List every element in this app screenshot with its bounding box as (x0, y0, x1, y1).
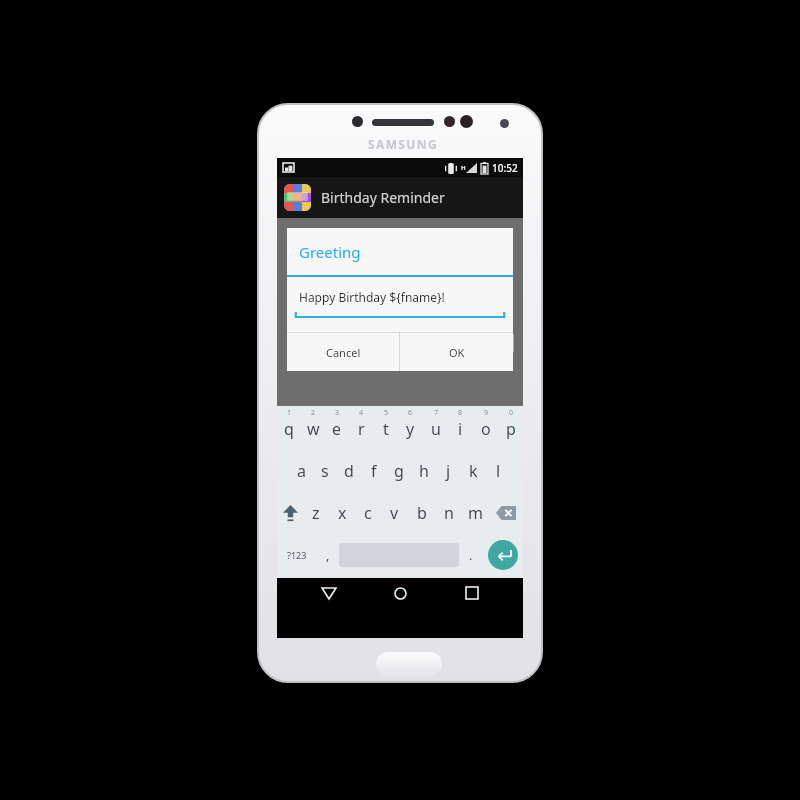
staticText: m (468, 502, 483, 524)
button[interactable]: 2 (301, 408, 325, 450)
button[interactable]: 7 (423, 408, 448, 450)
staticText: y (406, 418, 415, 440)
staticText: b (417, 502, 427, 524)
button[interactable]: Shift (277, 492, 303, 534)
button[interactable]: g (386, 450, 411, 492)
button[interactable]: Cancel (287, 333, 399, 371)
staticText: w (307, 418, 320, 440)
staticText: H (461, 164, 466, 172)
staticText: . (469, 546, 473, 564)
staticText: Enable notification by light? (287, 347, 404, 359)
staticText: v (390, 502, 399, 524)
staticText: i (458, 418, 463, 440)
staticText: Cancel (326, 345, 361, 360)
button[interactable]: b (408, 492, 435, 534)
button[interactable]: . (459, 534, 483, 576)
staticText: q (284, 418, 294, 440)
staticText: 1 (287, 408, 292, 418)
button[interactable]: d (337, 450, 361, 492)
staticText: j (446, 460, 451, 482)
button[interactable]: Backspace (489, 492, 523, 534)
staticText: z (312, 502, 320, 524)
button[interactable]: 9 (473, 408, 498, 450)
button[interactable]: s (313, 450, 337, 492)
button[interactable]: Enter (488, 540, 518, 570)
button[interactable]: x (329, 492, 355, 534)
staticText: a (297, 460, 306, 482)
button[interactable]: k (461, 450, 486, 492)
staticText: SAMSUNG (360, 136, 446, 152)
staticText: t (383, 418, 389, 440)
staticText: ?123 (287, 549, 307, 561)
staticText: h (419, 460, 429, 482)
button[interactable]: l (486, 450, 511, 492)
button[interactable]: j (436, 450, 461, 492)
button[interactable]: h (411, 450, 436, 492)
button[interactable]: f (361, 450, 386, 492)
staticText: 5 (384, 408, 389, 418)
staticText: 8 (458, 408, 463, 418)
staticText: , (326, 546, 330, 564)
staticText: c (364, 502, 372, 524)
staticText: 7 (434, 408, 439, 418)
button[interactable]: 0 (498, 408, 523, 450)
staticText: r (358, 418, 365, 440)
button[interactable]: Home (380, 578, 420, 608)
button[interactable]: OK (400, 333, 513, 371)
staticText: 0 (509, 408, 514, 418)
button[interactable]: Back (309, 578, 349, 608)
staticText: Greeting (299, 242, 361, 262)
staticText: o (481, 418, 491, 440)
button[interactable]: 3 (325, 408, 349, 450)
staticText: Birthday Reminder (321, 188, 445, 207)
staticText: Light (287, 327, 318, 345)
button[interactable]: , (317, 534, 339, 576)
staticText: 9 (484, 408, 489, 418)
button[interactable]: 5 (373, 408, 398, 450)
staticText: s (321, 460, 329, 482)
button[interactable]: c (355, 492, 381, 534)
button[interactable]: Light (277, 321, 523, 365)
staticText: 3 (335, 408, 340, 418)
button[interactable]: m (462, 492, 489, 534)
button[interactable]: v (381, 492, 408, 534)
staticText: OK (449, 345, 465, 360)
staticText: n (444, 502, 454, 524)
staticText: d (344, 460, 354, 482)
button[interactable]: Home (376, 652, 442, 676)
staticText: Happy Birthday ${fname}! (299, 289, 445, 305)
staticText: k (469, 460, 478, 482)
staticText: f (371, 460, 377, 482)
staticText: 2 (311, 408, 316, 418)
staticText: 6 (408, 408, 413, 418)
staticText: x (338, 502, 347, 524)
button[interactable]: 1 (277, 408, 301, 450)
staticText: 4 (359, 408, 364, 418)
button[interactable]: 6 (398, 408, 423, 450)
staticText: l (496, 460, 501, 482)
staticText: g (394, 460, 404, 482)
button[interactable]: n (435, 492, 462, 534)
staticText: e (332, 418, 342, 440)
button[interactable]: 8 (448, 408, 473, 450)
button[interactable]: ?123 (277, 534, 317, 576)
staticText: u (431, 418, 441, 440)
button[interactable]: Recents (452, 578, 492, 608)
button[interactable]: 4 (349, 408, 373, 450)
staticText: p (506, 418, 516, 440)
button[interactable]: z (303, 492, 329, 534)
staticText: 10:52 (492, 161, 518, 175)
button[interactable]: a (289, 450, 313, 492)
